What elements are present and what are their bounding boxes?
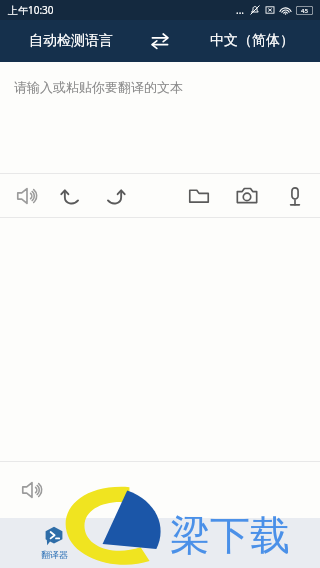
button[interactable]: Voice input (278, 179, 312, 213)
staticText: ... (236, 3, 245, 17)
button[interactable]: 中文（简体） (183, 20, 320, 62)
button[interactable]: Camera (230, 179, 264, 213)
button[interactable]: Speak translation (12, 470, 52, 510)
staticText: 自动检测语言 (29, 32, 113, 50)
staticText: 上午10:30 (8, 3, 54, 17)
button[interactable]: Redo (98, 179, 132, 213)
button[interactable]: Swap languages (137, 20, 183, 62)
button[interactable]: 请输入或粘贴你要翻译的文本 (0, 63, 320, 173)
staticText: 请输入或粘贴你要翻译的文本 (14, 79, 183, 95)
button[interactable]: Files (182, 179, 216, 213)
button[interactable]: 自动检测语言 (0, 20, 137, 62)
staticText: 翻译器 (41, 549, 68, 560)
button[interactable]: Speak text (10, 179, 44, 213)
staticText: 梁下载 (170, 510, 290, 560)
button[interactable]: 翻译器 (30, 526, 78, 560)
staticText: 中文（简体） (210, 32, 294, 50)
staticText: 45 (301, 7, 308, 15)
button[interactable]: Undo (54, 179, 88, 213)
